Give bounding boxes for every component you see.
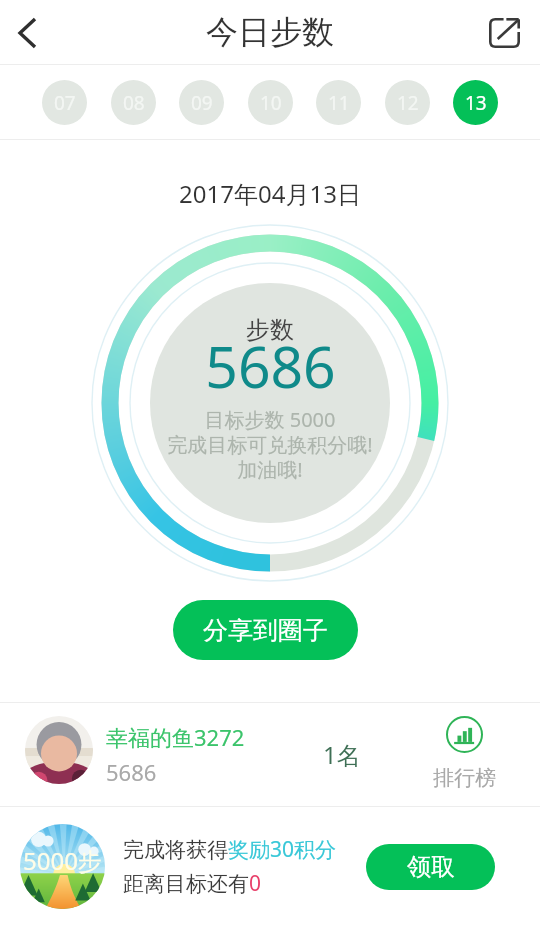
button[interactable]: Back [0, 1, 55, 65]
button[interactable]: 排行榜 [405, 719, 523, 791]
staticText: 5686 [205, 327, 336, 405]
staticText: 11 [328, 90, 350, 116]
button[interactable]: Share [476, 1, 532, 65]
staticText: 13 [465, 90, 487, 116]
button[interactable]: 11 [316, 80, 361, 125]
button[interactable]: 分享到圈子 [173, 600, 358, 660]
staticText: 排行榜 [433, 765, 496, 791]
staticText: 08 [123, 90, 145, 116]
staticText: 10 [260, 90, 282, 116]
staticText: 今日步数 [206, 12, 334, 52]
button[interactable]: 领取 [366, 844, 495, 890]
staticText: 07 [54, 90, 76, 116]
button[interactable]: 12 [385, 80, 430, 125]
staticText: 09 [191, 90, 213, 116]
staticText: 2017年04月13日 [0, 177, 540, 210]
button[interactable]: 幸福的鱼3272 [0, 703, 540, 806]
staticText: 5686 [106, 757, 157, 787]
staticText: 领取 [407, 852, 455, 882]
staticText: 1名 [323, 738, 361, 771]
button[interactable]: 13 [453, 80, 498, 125]
button[interactable]: 10 [248, 80, 293, 125]
staticText: 分享到圈子 [203, 615, 328, 646]
button[interactable]: 09 [179, 80, 224, 125]
staticText: 距离目标还有0 [123, 869, 262, 898]
staticText: 步数 [246, 315, 294, 345]
staticText: 目标步数 5000 完成目标可兑换积分哦! 加油哦! [167, 406, 373, 483]
staticText: 5000步 [23, 844, 102, 877]
button[interactable]: 08 [111, 80, 156, 125]
button[interactable]: 07 [42, 80, 87, 125]
staticText: 完成将获得奖励30积分 [123, 835, 337, 864]
staticText: 幸福的鱼3272 [106, 722, 245, 752]
staticText: 12 [397, 90, 419, 116]
